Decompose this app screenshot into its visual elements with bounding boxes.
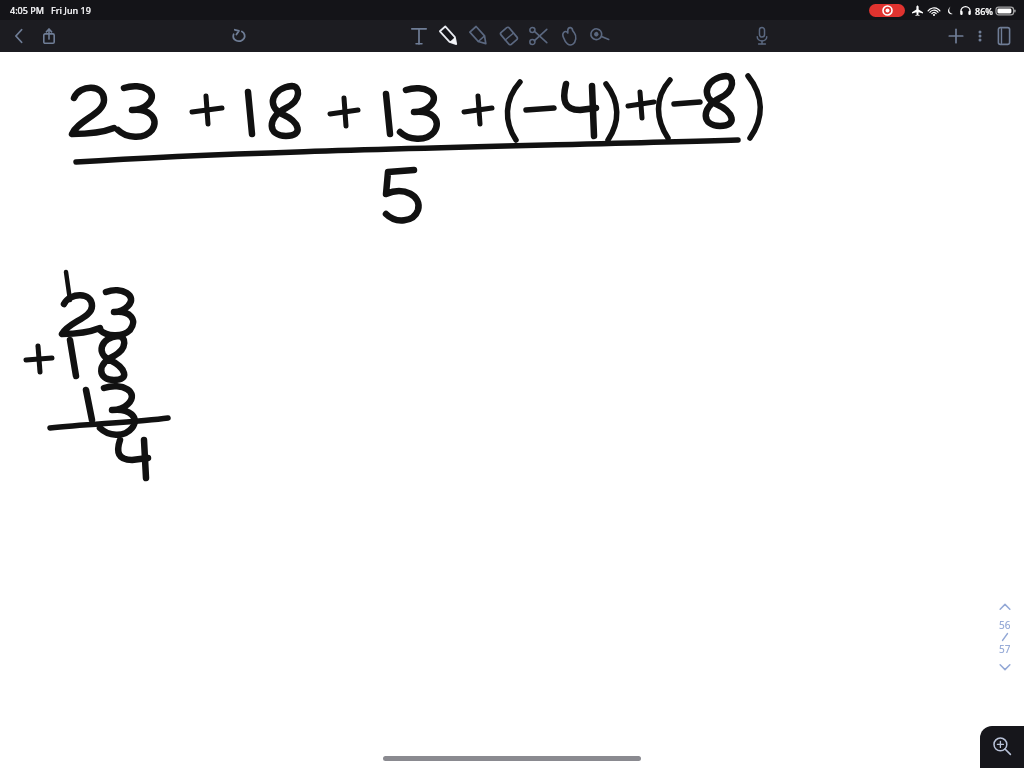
- button[interactable]: Hand tool: [554, 21, 584, 51]
- button[interactable]: Eraser: [494, 21, 524, 51]
- button[interactable]: Previous page: [994, 596, 1016, 618]
- button[interactable]: Microphone: [748, 22, 776, 50]
- button[interactable]: More options: [970, 26, 990, 46]
- button[interactable]: Page view: [990, 22, 1018, 50]
- button[interactable]: Pen tool: [434, 21, 464, 51]
- button[interactable]: Text tool: [404, 21, 434, 51]
- staticText: 86%: [975, 5, 993, 17]
- button[interactable]: Highlighter: [464, 21, 494, 51]
- button[interactable]: Back: [6, 23, 32, 49]
- staticText: 4:05 PM Fri Jun 19: [10, 4, 91, 16]
- button[interactable]: Cut: [524, 21, 554, 51]
- button[interactable]: Next page: [994, 656, 1016, 678]
- staticText: 56: [999, 618, 1011, 632]
- button[interactable]: Zoom in: [980, 726, 1024, 768]
- button[interactable]: Undo: [226, 23, 252, 49]
- button[interactable]: Add page: [942, 22, 970, 50]
- button[interactable]: 56: [990, 618, 1020, 656]
- button[interactable]: Recording: [869, 4, 905, 17]
- button[interactable]: Share: [36, 23, 62, 49]
- button[interactable]: Lasso tool: [584, 21, 614, 51]
- staticText: 57: [999, 642, 1011, 656]
